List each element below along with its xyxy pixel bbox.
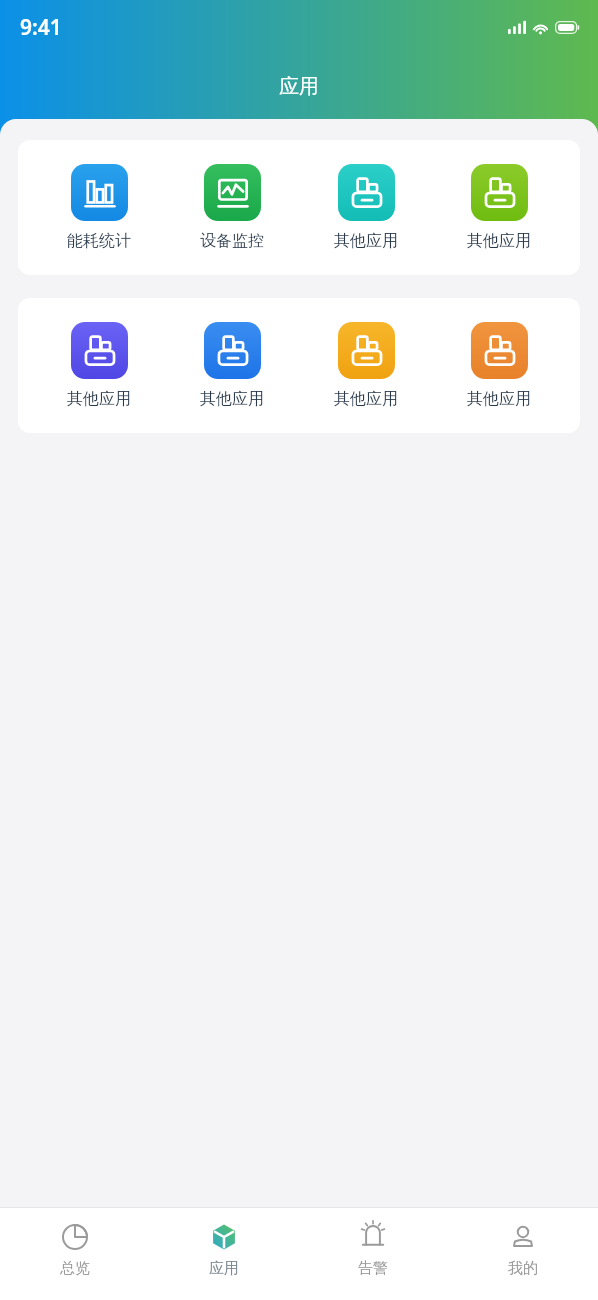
- button[interactable]: 其他应用: [314, 162, 418, 253]
- button[interactable]: 其他应用: [180, 320, 284, 411]
- staticText: 应用: [279, 74, 319, 99]
- button[interactable]: 应用: [149, 1208, 298, 1278]
- staticText: 其他应用: [334, 389, 398, 409]
- button[interactable]: 其他应用: [447, 162, 551, 253]
- staticText: 其他应用: [200, 389, 264, 409]
- staticText: 9:41: [20, 13, 62, 42]
- button[interactable]: 告警: [298, 1208, 448, 1278]
- staticText: 其他应用: [334, 231, 398, 251]
- staticText: 其他应用: [467, 389, 531, 409]
- button[interactable]: 能耗统计: [47, 162, 151, 253]
- staticText: 总览: [60, 1259, 90, 1278]
- staticText: 告警: [358, 1259, 388, 1278]
- staticText: 其他应用: [67, 389, 131, 409]
- button[interactable]: 其他应用: [47, 320, 151, 411]
- staticText: 应用: [209, 1259, 239, 1278]
- staticText: 我的: [508, 1259, 538, 1278]
- staticText: 其他应用: [467, 231, 531, 251]
- button[interactable]: 我的: [448, 1208, 598, 1278]
- button[interactable]: 其他应用: [447, 320, 551, 411]
- button[interactable]: 总览: [0, 1208, 149, 1278]
- button[interactable]: 其他应用: [314, 320, 418, 411]
- staticText: 设备监控: [200, 231, 264, 251]
- staticText: 能耗统计: [67, 231, 131, 251]
- button[interactable]: 设备监控: [180, 162, 284, 253]
